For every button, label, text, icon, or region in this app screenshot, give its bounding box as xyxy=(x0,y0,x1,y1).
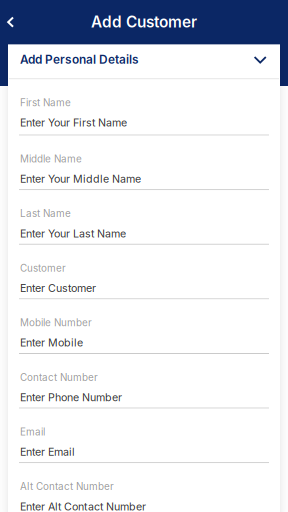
button[interactable]: Back xyxy=(0,0,21,44)
staticText: Enter Alt Contact Number xyxy=(20,500,146,512)
staticText: Add Customer xyxy=(91,13,197,31)
staticText: Enter Email xyxy=(20,445,75,458)
staticText: Enter Phone Number xyxy=(20,391,122,404)
staticText: Alt Contact Number xyxy=(20,480,114,492)
staticText: Mobile Number xyxy=(20,317,92,329)
staticText: Contact Number xyxy=(20,371,98,383)
staticText: Enter Your Last Name xyxy=(20,227,126,240)
staticText: Last Name xyxy=(20,207,71,219)
staticText: Enter Customer xyxy=(20,282,96,294)
button[interactable]: Add Personal Details xyxy=(8,45,280,78)
staticText: Enter Your First Name xyxy=(20,116,127,129)
staticText: Enter Mobile xyxy=(20,336,83,349)
staticText: Add Personal Details xyxy=(20,52,139,67)
staticText: Email xyxy=(20,426,45,438)
staticText: First Name xyxy=(20,97,71,109)
staticText: Enter Your Middle Name xyxy=(20,172,141,185)
staticText: Middle Name xyxy=(20,153,82,165)
staticText: Customer xyxy=(20,262,66,274)
